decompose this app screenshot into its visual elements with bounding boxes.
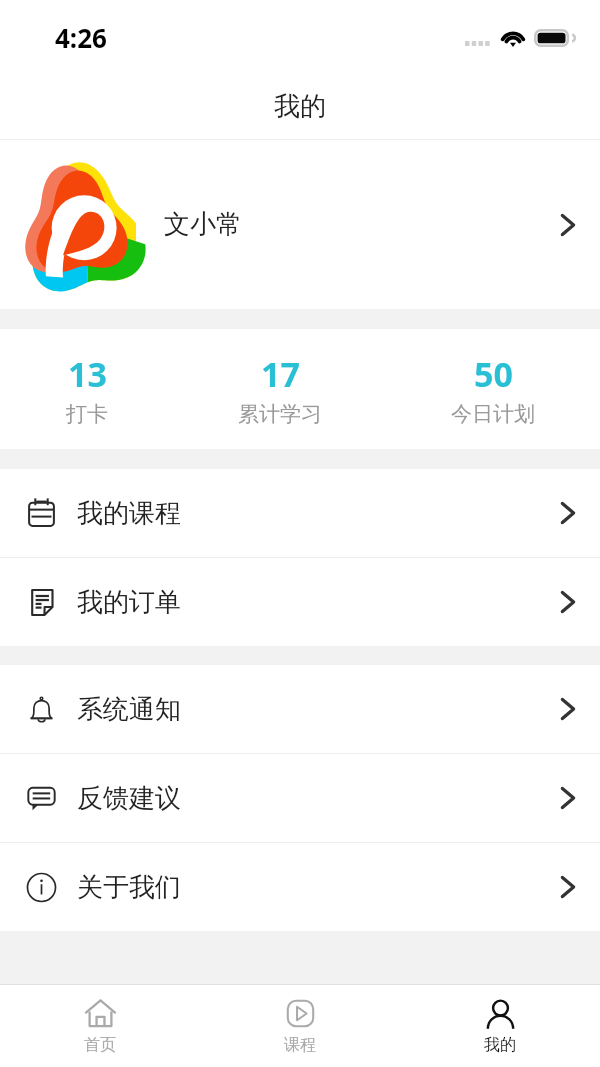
button[interactable]: 我的 [400,985,600,1067]
staticText: 关于我们 [77,871,181,904]
staticText: 我的 [274,90,326,123]
staticText: 50 [474,351,513,397]
staticText: 我的课程 [77,497,181,530]
staticText: 打卡 [66,401,108,427]
button[interactable]: 课程 [200,985,400,1067]
staticText: 课程 [284,1035,316,1055]
staticText: 系统通知 [77,693,181,726]
staticText: 4:26 [55,20,107,55]
staticText: 反馈建议 [77,782,181,815]
button[interactable]: 关于我们 [0,843,600,931]
button[interactable]: 反馈建议 [0,754,600,842]
staticText: 13 [68,351,107,397]
button[interactable]: 17 [174,329,386,449]
button[interactable]: 我的订单 [0,558,600,646]
staticText: 今日计划 [451,401,535,427]
button[interactable]: 首页 [0,985,200,1067]
staticText: 首页 [84,1035,116,1055]
button[interactable]: 50 [386,329,600,449]
button[interactable]: 13 [0,329,174,449]
staticText: 17 [261,351,300,397]
staticText: 文小常 [164,208,242,241]
staticText: 累计学习 [238,401,322,427]
button[interactable]: 我的课程 [0,469,600,557]
button[interactable]: 系统通知 [0,665,600,753]
staticText: 我的 [484,1035,516,1055]
staticText: 我的订单 [77,586,181,619]
button[interactable]: 文小常 [0,140,600,309]
